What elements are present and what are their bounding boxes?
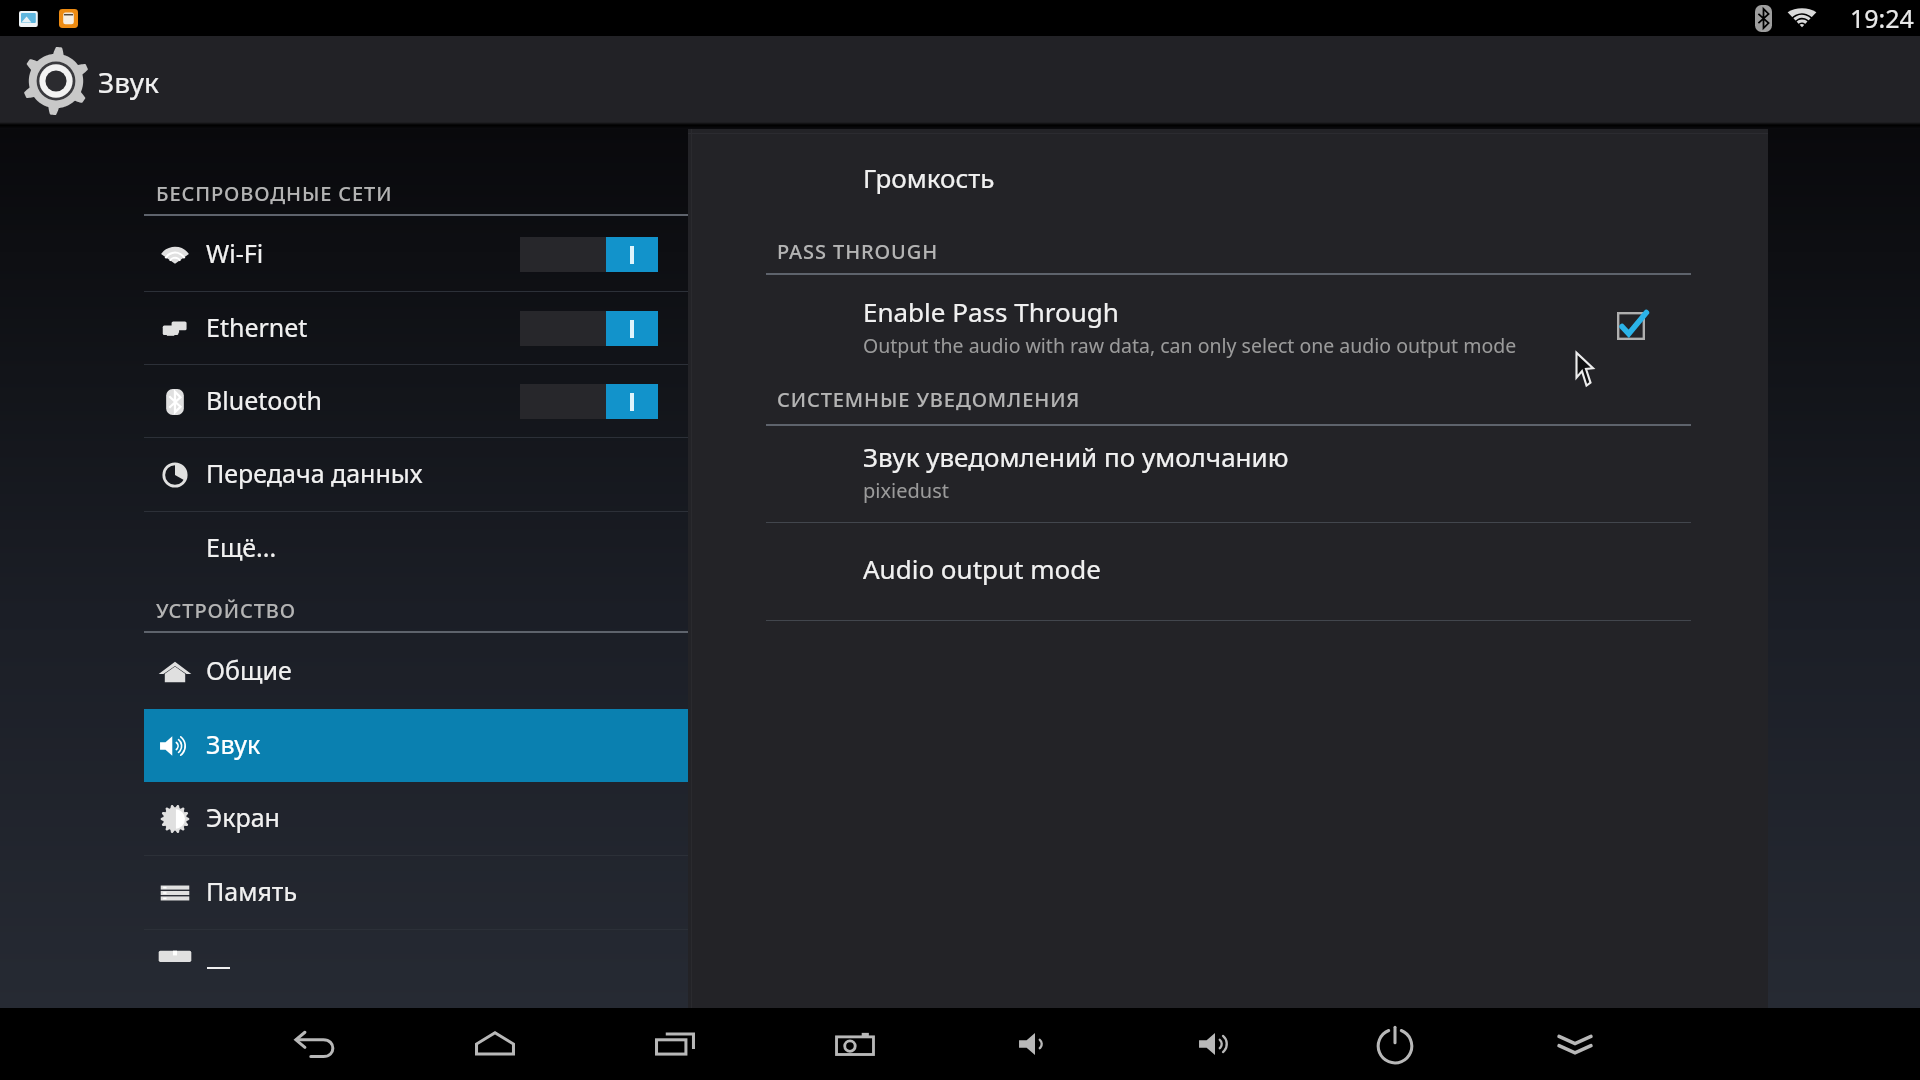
staticText: Bluetooth [206,383,323,417]
staticText: Ещё... [206,530,277,564]
staticText: БЕСПРОВОДНЫЕ СЕТИ [156,180,393,207]
button[interactable]: Wi-Fi toggle, on [520,237,658,272]
button[interactable]: Ethernet [0,292,688,365]
staticText: Общие [206,653,292,687]
button[interactable]: Bluetooth toggle, on [520,384,658,419]
button[interactable]: Home [405,1008,585,1080]
button[interactable]: Экран [0,782,688,855]
button[interactable]: Память [0,856,688,929]
staticText: УСТРОЙСТВО [156,597,297,624]
staticText: Звук уведомлений по умолчанию [863,439,1289,474]
button[interactable]: Back [225,1008,405,1080]
staticText: Передача данных [206,456,423,490]
button[interactable]: Wi-Fi [0,218,688,291]
staticText: Output the audio with raw data, can only… [863,332,1517,359]
staticText: Громкость [863,160,995,195]
button[interactable]: Enable Pass Through [688,285,1768,375]
button[interactable]: Bluetooth [0,365,688,438]
staticText: Audio output mode [863,551,1101,586]
button[interactable]: Общие [0,635,688,708]
button[interactable]: Power [1305,1008,1485,1080]
staticText: Ethernet [206,310,308,344]
button[interactable]: Звук уведомлений по умолчанию [688,429,1768,514]
staticText: СИСТЕМНЫЕ УВЕДОМЛЕНИЯ [777,386,1081,413]
button[interactable]: Enable Pass Through checkbox [1617,312,1645,340]
staticText: Звук [98,63,159,101]
button[interactable]: Volume down [945,1008,1125,1080]
button[interactable]: Audio output mode [688,520,1768,617]
staticText: Enable Pass Through [863,294,1119,329]
button[interactable]: Screenshot [765,1008,945,1080]
staticText: Экран [206,800,280,834]
button[interactable]: Volume up [1125,1008,1305,1080]
button[interactable]: — [0,930,688,1003]
button[interactable] [10,43,210,123]
staticText: — [206,948,232,982]
button[interactable]: Recent apps [585,1008,765,1080]
staticText: pixiedust [863,477,949,504]
button[interactable]: Hide navigation [1485,1008,1665,1080]
button[interactable]: Передача данных [0,438,688,511]
staticText: 19:24 [1850,1,1914,35]
button[interactable]: Ethernet toggle, on [520,311,658,346]
button[interactable]: Звук [144,709,688,782]
button[interactable]: Ещё... [0,512,688,585]
button[interactable]: Status bar: Bluetooth, Wi-Fi, clock 19:2… [1755,1,1920,35]
button[interactable]: Громкость [688,145,1768,210]
staticText: PASS THROUGH [777,238,939,265]
staticText: Звук [206,727,261,761]
staticText: Память [206,874,298,908]
staticText: Wi-Fi [206,236,264,270]
